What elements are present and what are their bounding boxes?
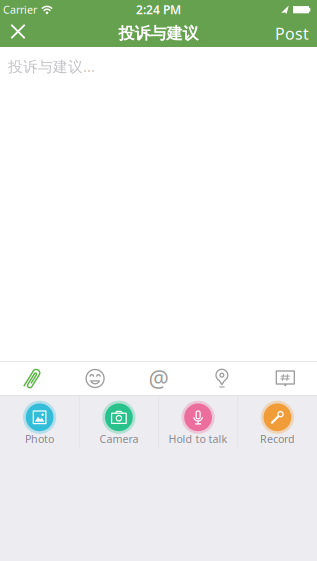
button[interactable]: Topic (265, 362, 305, 395)
staticText: @ (148, 363, 168, 393)
button[interactable]: Post (275, 20, 317, 47)
button[interactable]: Attach (12, 364, 52, 397)
staticText: Record (260, 432, 295, 446)
button[interactable]: Mention (138, 362, 178, 395)
button[interactable]: Emoji (75, 362, 115, 395)
staticText: Hold to talk (169, 432, 228, 446)
button[interactable]: Location (202, 361, 242, 394)
staticText: Camera (99, 432, 138, 446)
staticText: 投诉与建议 (118, 24, 198, 43)
staticText: Carrier (3, 3, 37, 17)
button[interactable]: Camera (79, 395, 158, 453)
button[interactable]: Record (238, 395, 317, 453)
button[interactable]: Hold to talk (159, 395, 238, 453)
button[interactable]: Photo (0, 395, 79, 453)
staticText: 2:24 PM (136, 2, 181, 18)
button[interactable]: Close (0, 20, 33, 47)
staticText: 投诉与建议... (8, 57, 95, 76)
staticText: Photo (25, 432, 54, 446)
staticText: Post (275, 23, 309, 44)
